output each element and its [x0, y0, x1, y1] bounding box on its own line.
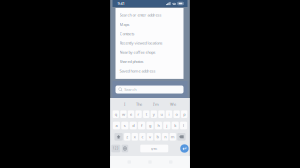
staticText: Contacts: [119, 31, 134, 36]
staticText: p: [183, 111, 185, 117]
staticText: 123: [113, 147, 119, 150]
button[interactable]: b: [154, 133, 161, 141]
staticText: y: [153, 111, 155, 117]
button[interactable]: c: [139, 133, 146, 141]
staticText: I: [124, 101, 125, 107]
button[interactable]: f: [138, 122, 145, 129]
staticText: c: [141, 134, 143, 139]
staticText: k: [174, 123, 176, 128]
staticText: b: [157, 134, 159, 139]
staticText: Saved home address: [119, 68, 155, 73]
staticText: i: [168, 111, 169, 117]
button[interactable]: Delete: [177, 133, 186, 141]
staticText: I'm: [153, 101, 159, 107]
staticText: n: [164, 134, 166, 139]
staticText: m: [171, 134, 175, 139]
staticText: o: [176, 111, 178, 117]
button[interactable]: a: [113, 122, 120, 129]
staticText: v: [149, 134, 151, 139]
button[interactable]: y: [151, 110, 157, 118]
staticText: a: [115, 123, 117, 128]
button[interactable]: I: [124, 101, 125, 107]
button[interactable]: m: [170, 133, 176, 141]
staticText: Search: [124, 87, 136, 92]
button[interactable]: h: [155, 122, 162, 129]
staticText: Maps: [119, 22, 129, 27]
staticText: r: [138, 111, 140, 117]
button[interactable]: Saved home address: [115, 66, 183, 75]
staticText: l: [183, 123, 184, 128]
button[interactable]: e: [128, 110, 134, 118]
button[interactable]: Go: [180, 144, 189, 153]
button[interactable]: x: [132, 133, 138, 141]
button[interactable]: r: [135, 110, 142, 118]
staticText: w: [122, 111, 125, 117]
staticText: 9:41: [117, 1, 124, 6]
button[interactable]: v: [147, 133, 153, 141]
button[interactable]: o: [173, 110, 180, 118]
button[interactable]: Recently viewed locations: [115, 38, 183, 48]
staticText: Recently viewed locations: [119, 40, 162, 46]
button[interactable]: z: [124, 133, 130, 141]
button[interactable]: d: [130, 122, 137, 129]
staticText: h: [157, 123, 159, 128]
button[interactable]: j: [163, 122, 170, 129]
button[interactable]: t: [143, 110, 149, 118]
button[interactable]: s: [121, 122, 128, 129]
staticText: e: [130, 111, 132, 117]
staticText: d: [132, 123, 134, 128]
button[interactable]: g: [146, 122, 154, 129]
button[interactable]: Maps: [115, 20, 183, 29]
button[interactable]: Next keyboard: [122, 145, 128, 152]
button[interactable]: The: [136, 101, 142, 107]
button[interactable]: p: [181, 110, 187, 118]
button[interactable]: Search: [115, 85, 183, 93]
staticText: u: [160, 111, 162, 117]
button[interactable]: 123: [111, 145, 120, 152]
button[interactable]: n: [162, 133, 168, 141]
staticText: Nearby coffee shops: [119, 50, 155, 55]
button[interactable]: k: [172, 122, 179, 129]
button[interactable]: u: [158, 110, 165, 118]
button[interactable]: Contacts: [115, 29, 183, 38]
staticText: q: [115, 111, 117, 117]
staticText: t: [146, 111, 147, 117]
staticText: j: [166, 123, 167, 128]
staticText: x: [134, 134, 136, 139]
button[interactable]: Shift: [114, 133, 123, 141]
button[interactable]: space: [140, 145, 168, 152]
button[interactable]: q: [113, 110, 119, 118]
staticText: g: [149, 123, 151, 128]
button[interactable]: Search or enter address: [115, 10, 183, 20]
button[interactable]: Nearby coffee shops: [115, 48, 183, 57]
button[interactable]: I'm: [153, 101, 159, 107]
staticText: space: [151, 147, 158, 150]
staticText: Search or enter address: [119, 12, 161, 18]
staticText: s: [124, 123, 126, 128]
staticText: We: [170, 101, 176, 107]
button[interactable]: w: [120, 110, 127, 118]
button[interactable]: i: [166, 110, 172, 118]
staticText: Shared photos: [119, 59, 143, 64]
staticText: The: [136, 101, 142, 107]
button[interactable]: Shared photos: [115, 57, 183, 66]
button[interactable]: We: [170, 101, 176, 107]
staticText: z: [126, 134, 128, 139]
staticText: f: [141, 123, 142, 128]
button[interactable]: l: [180, 122, 187, 129]
